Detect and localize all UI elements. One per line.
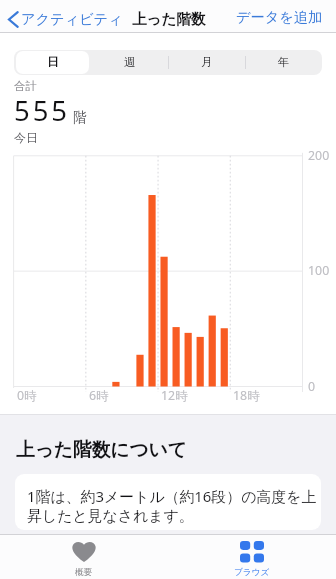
staticText: 1階は、約3メートル（約16段）の高度を上昇したと見なされます。: [27, 486, 319, 526]
button[interactable]: 日: [14, 50, 91, 75]
staticText: アクティビティ: [21, 10, 123, 28]
staticText: 合計: [14, 79, 37, 93]
staticText: 年: [278, 55, 290, 69]
staticText: 0: [308, 378, 316, 395]
staticText: 日: [47, 55, 59, 69]
button[interactable]: 年: [245, 50, 322, 75]
staticText: 今日: [14, 130, 38, 145]
staticText: 12時: [161, 387, 188, 404]
staticText: 階: [73, 109, 87, 126]
button[interactable]: 戻る: [5, 8, 126, 30]
staticText: 0時: [17, 387, 37, 404]
other: 概要: [72, 541, 96, 562]
staticText: 上った階数: [132, 10, 206, 28]
staticText: データを追加: [236, 8, 323, 26]
staticText: 100: [308, 262, 330, 279]
staticText: 555: [14, 92, 70, 129]
staticText: 6時: [89, 387, 109, 404]
staticText: ブラウズ: [234, 567, 270, 578]
staticText: 上った階数について: [16, 438, 187, 462]
button[interactable]: データを追加: [233, 6, 326, 28]
staticText: 18時: [233, 387, 260, 404]
button[interactable]: 概要: [0, 535, 168, 579]
other: ブラウズ: [240, 541, 264, 562]
button[interactable]: 月: [168, 50, 245, 75]
button[interactable]: ブラウズ: [168, 535, 336, 579]
staticText: 週: [124, 55, 136, 69]
staticText: 月: [201, 55, 213, 69]
staticText: 200: [308, 147, 330, 164]
staticText: 概要: [75, 567, 93, 578]
button[interactable]: 週: [91, 50, 168, 75]
other: 戻る: [8, 11, 18, 28]
